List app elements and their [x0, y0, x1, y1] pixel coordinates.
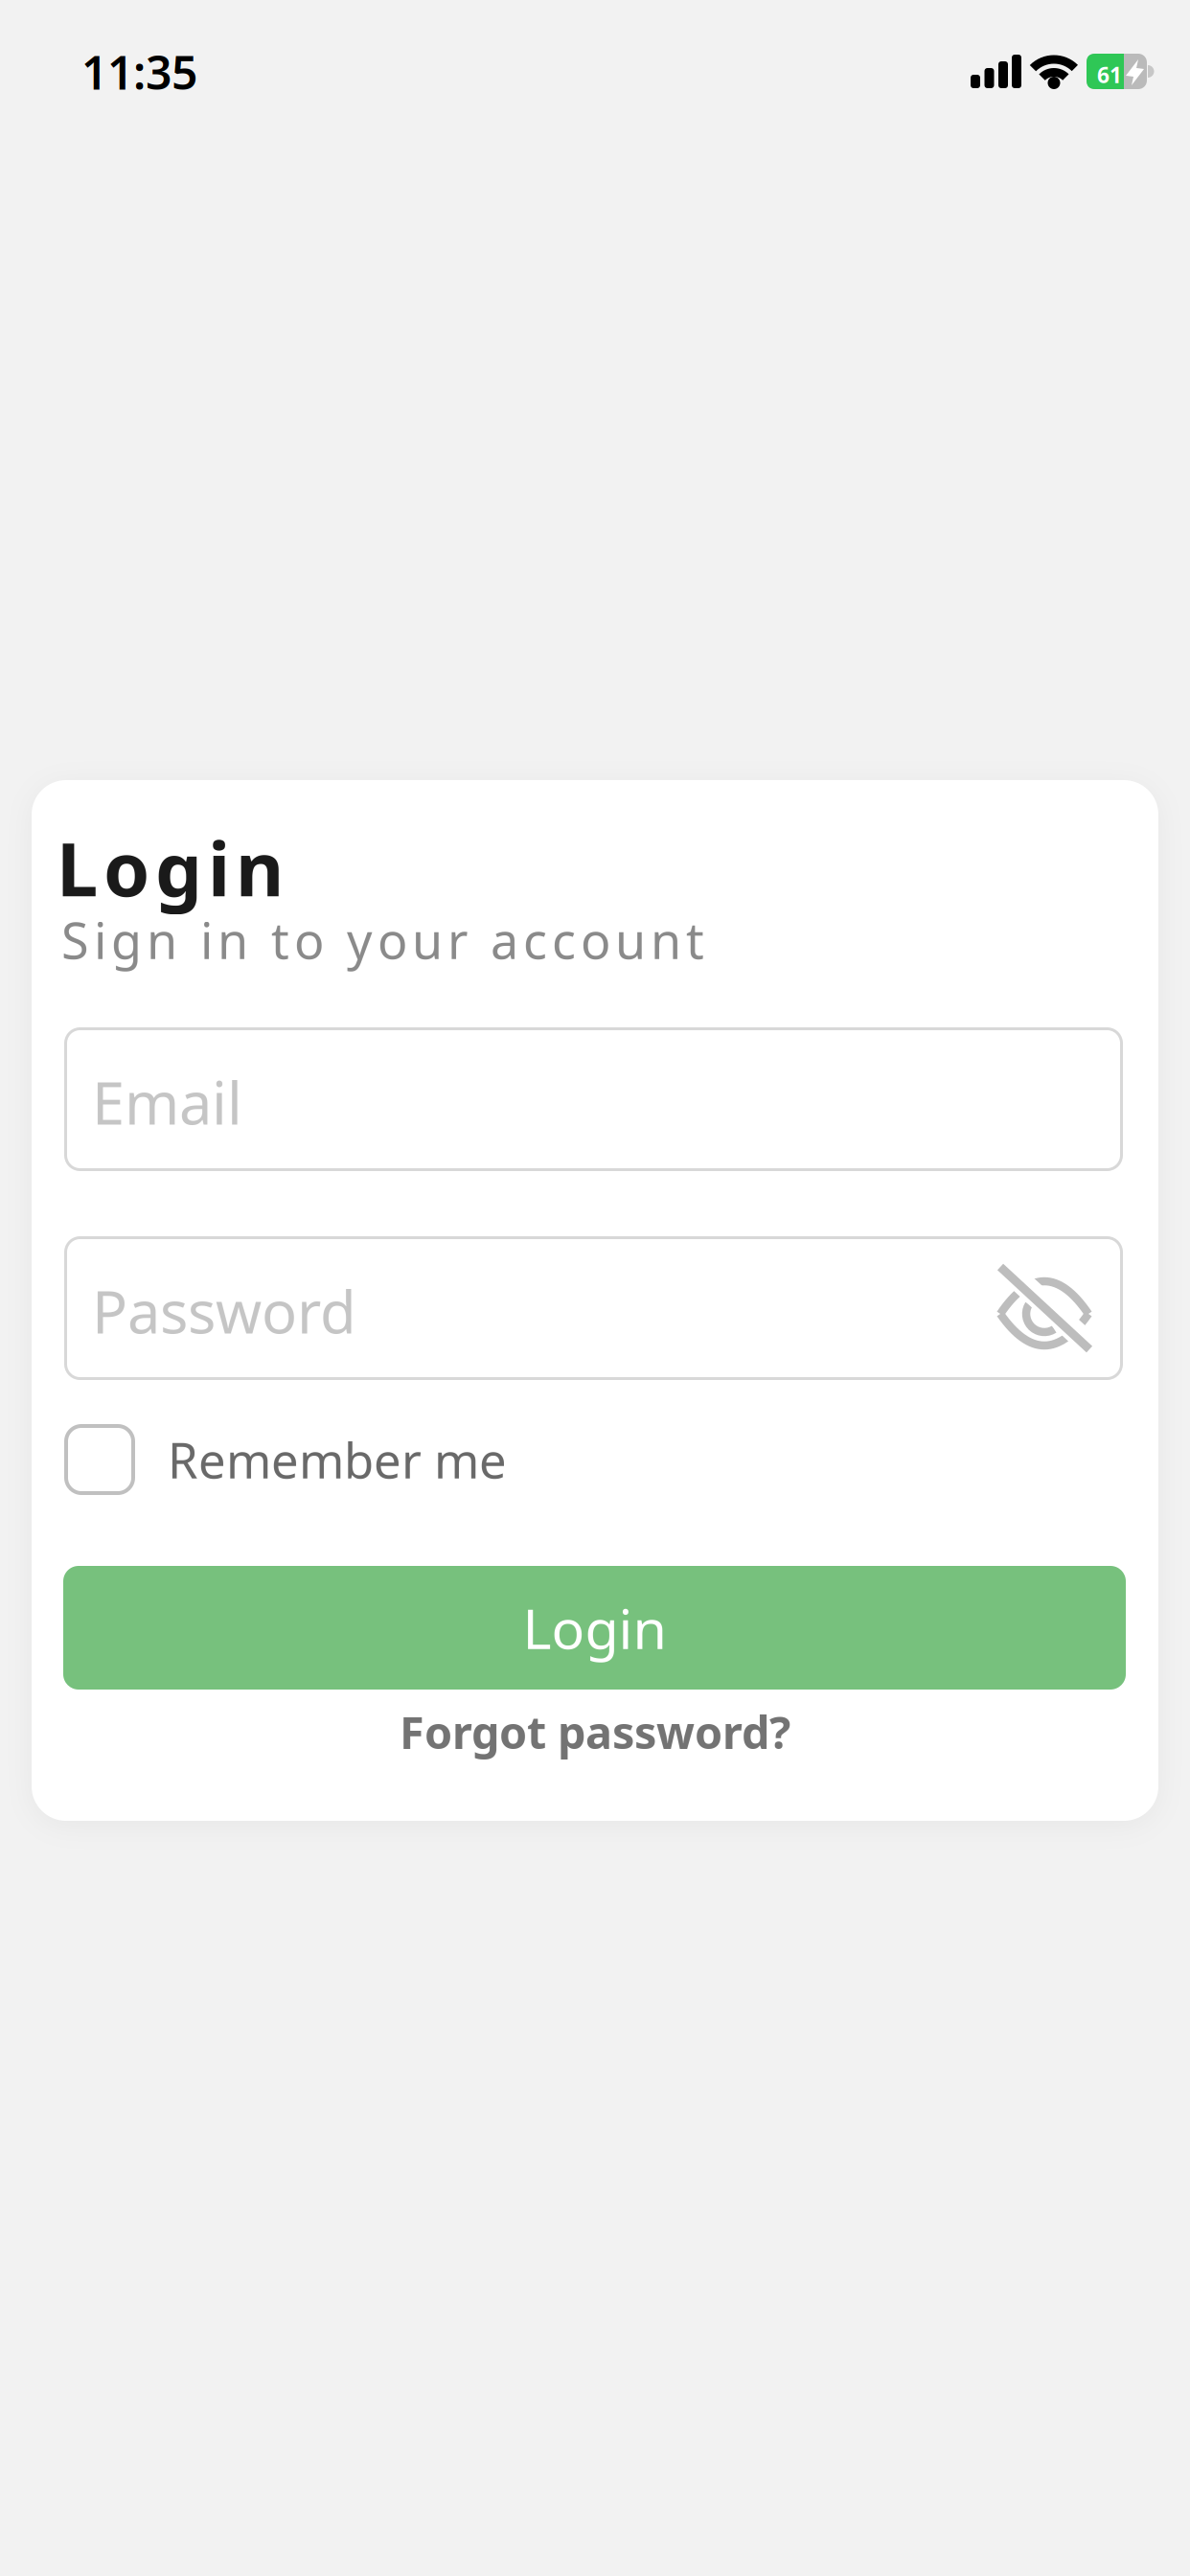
- button[interactable]: Remember me: [64, 1424, 507, 1495]
- button[interactable]: Login: [63, 1566, 1126, 1690]
- staticText: Remember me: [168, 1427, 507, 1492]
- staticText: Forgot password?: [400, 1702, 790, 1761]
- staticText: 11:35: [81, 41, 197, 102]
- staticText: Login: [523, 1591, 666, 1664]
- staticText: Login: [57, 818, 284, 917]
- staticText: Email: [92, 1063, 242, 1141]
- staticText: Password: [92, 1272, 356, 1350]
- button[interactable]: Show password: [986, 1253, 1105, 1372]
- staticText: Sign in to your account: [61, 907, 704, 973]
- button[interactable]: Forgot password?: [400, 1702, 790, 1761]
- staticText: 61: [1097, 60, 1122, 89]
